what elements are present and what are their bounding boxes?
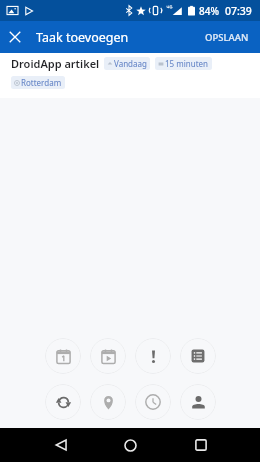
button[interactable]: Volgende week	[90, 338, 126, 374]
button[interactable]: 15 minuten	[155, 57, 212, 70]
button[interactable]: Persoon	[180, 384, 216, 420]
staticText: 07:39	[225, 4, 252, 18]
staticText: Taak toevoegen	[36, 29, 129, 46]
button[interactable]: Vandaag	[45, 338, 81, 374]
button[interactable]: OPSLAAN	[194, 25, 260, 50]
button[interactable]: Terug	[45, 429, 77, 461]
staticText: 15 minuten	[165, 58, 209, 69]
button[interactable]: Vandaag	[104, 57, 150, 70]
staticText: OPSLAAN	[205, 31, 249, 44]
button[interactable]: Lijst	[180, 338, 216, 374]
button[interactable]: Herhalen	[45, 384, 81, 420]
button[interactable]: Tijd	[135, 384, 171, 420]
button[interactable]: Prioriteit	[135, 338, 171, 374]
button[interactable]: Rotterdam	[11, 76, 65, 89]
staticText: 84%	[199, 4, 219, 18]
button[interactable]: Recente apps	[185, 429, 217, 461]
staticText: Rotterdam	[21, 77, 62, 88]
staticText: DroidApp artikel	[11, 56, 100, 71]
staticText: Vandaag	[114, 58, 147, 69]
button[interactable]: Home	[114, 429, 146, 461]
button[interactable]: Locatie	[90, 384, 126, 420]
button[interactable]: Sluiten	[0, 22, 30, 52]
